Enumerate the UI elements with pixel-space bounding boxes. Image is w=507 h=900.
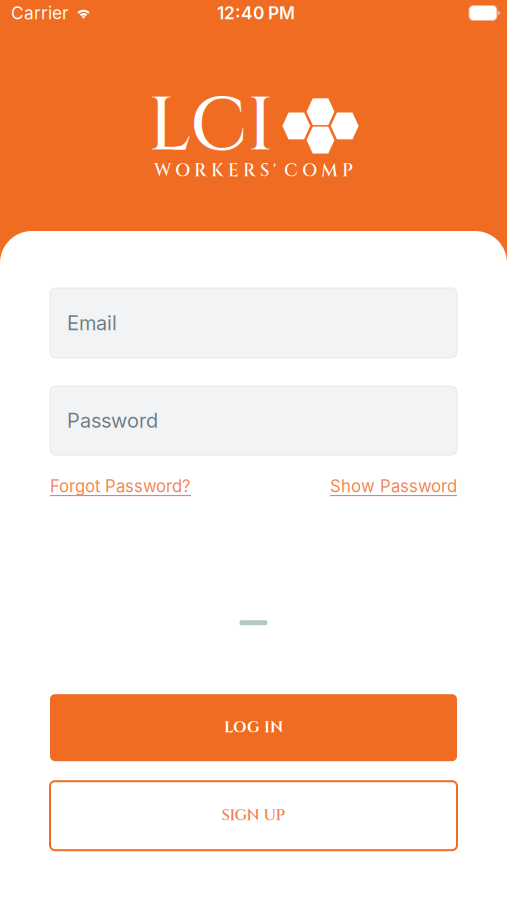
staticText: W O R K E R S ' C O M P: [154, 159, 353, 183]
button[interactable]: Forgot Password?: [50, 476, 191, 496]
staticText: Forgot Password?: [50, 476, 191, 496]
button[interactable]: Show Password: [330, 476, 457, 496]
staticText: Password: [67, 408, 158, 433]
staticText: SIGN UP: [221, 805, 285, 826]
staticText: Show Password: [330, 476, 457, 496]
staticText: Carrier: [11, 2, 69, 23]
staticText: Email: [67, 311, 117, 335]
staticText: LOG IN: [224, 717, 283, 738]
staticText: 12:40 PM: [217, 2, 295, 23]
staticText: LCI: [148, 77, 273, 177]
button[interactable]: LOG IN: [50, 694, 457, 761]
button[interactable]: SIGN UP: [50, 781, 457, 850]
